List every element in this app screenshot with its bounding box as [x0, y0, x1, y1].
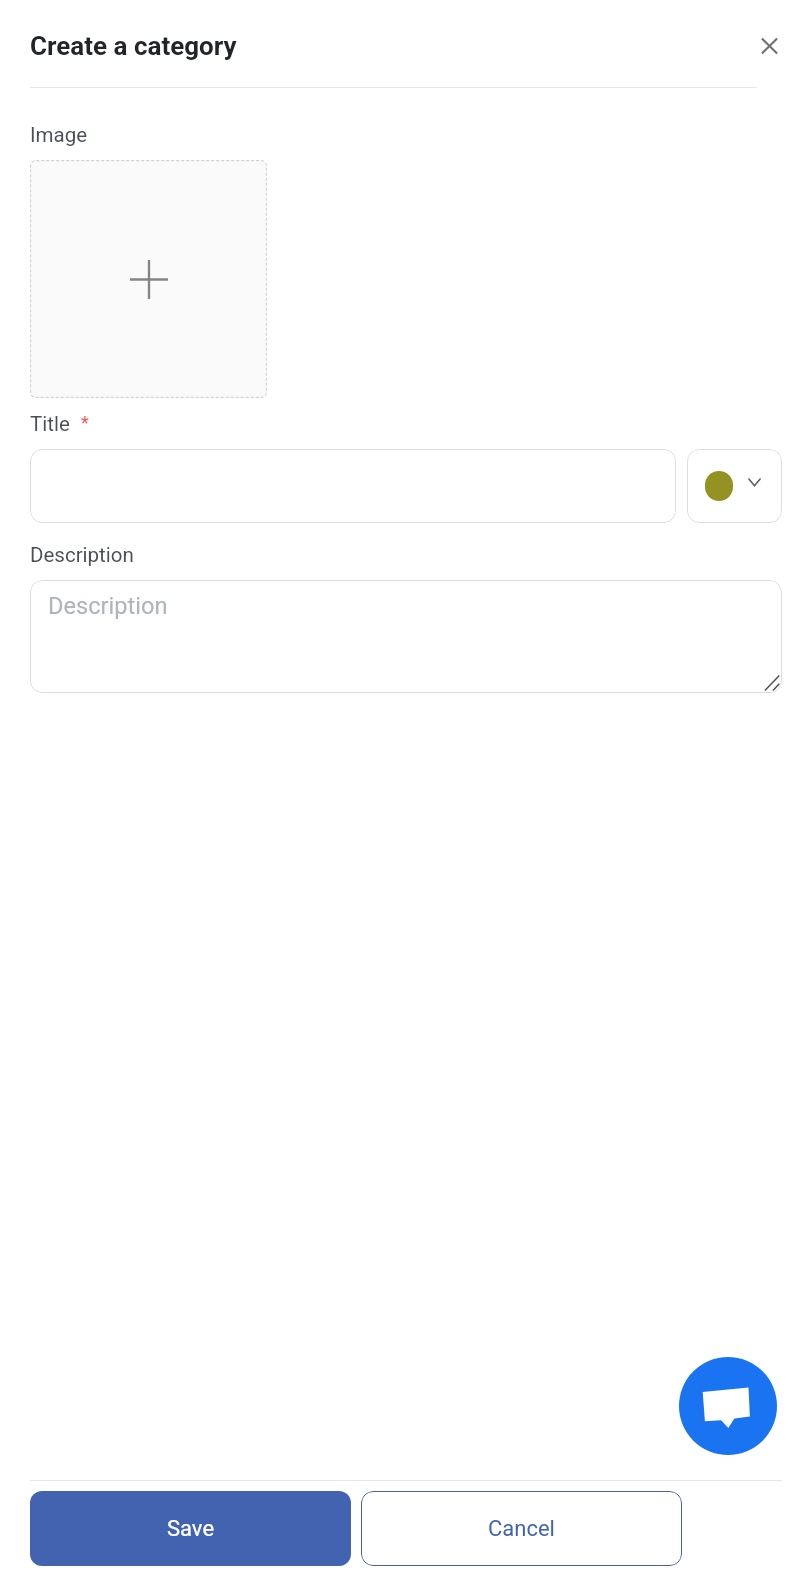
staticText: Save: [167, 1516, 215, 1542]
staticText: Image: [30, 123, 88, 147]
button[interactable]: Description input: [30, 580, 782, 693]
button[interactable]: Pick colour: [687, 449, 782, 523]
button[interactable]: Cancel: [361, 1491, 682, 1566]
button[interactable]: Add image: [30, 160, 267, 398]
button[interactable]: Title input: [30, 449, 676, 523]
button[interactable]: Save: [30, 1491, 351, 1566]
staticText: Create a category: [30, 31, 237, 61]
staticText: *: [81, 412, 89, 433]
button[interactable]: Close: [752, 29, 787, 64]
staticText: Cancel: [488, 1516, 555, 1542]
staticText: Title: [30, 412, 70, 436]
button[interactable]: Chat: [679, 1357, 777, 1455]
staticText: Description: [48, 592, 168, 620]
staticText: Description: [30, 543, 134, 567]
